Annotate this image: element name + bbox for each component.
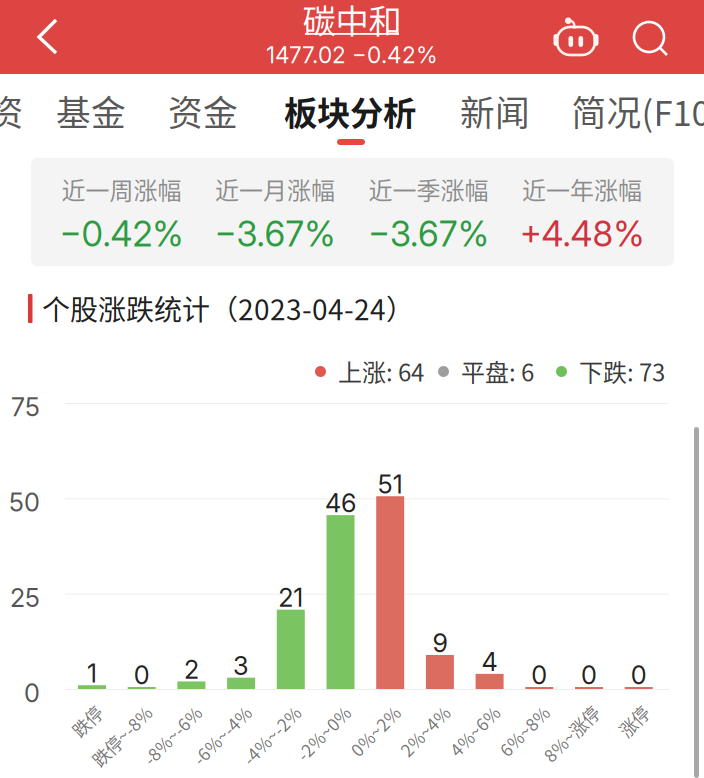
button[interactable]: 基金 [52, 74, 130, 148]
staticText: 下跌: 73 [579, 354, 665, 388]
staticText: +4.48% [519, 213, 644, 255]
button[interactable]: AI assistant [545, 0, 607, 74]
staticText: 0 [531, 660, 547, 690]
staticText: 50 [9, 487, 40, 518]
staticText: −3.67% [368, 213, 489, 255]
staticText: 基金 [56, 86, 126, 136]
staticText: -4%~-2% [224, 696, 298, 722]
button[interactable]: 资 [0, 74, 28, 148]
staticText: 4 [482, 647, 498, 677]
staticText: 3 [233, 650, 249, 681]
staticText: -8%~-6% [124, 696, 198, 722]
staticText: 8%~涨停 [526, 696, 596, 722]
staticText: −3.67% [214, 213, 335, 255]
staticText: 1477.02 −0.42% [266, 41, 438, 69]
staticText: 25 [10, 582, 40, 613]
staticText: 46 [325, 488, 356, 518]
button[interactable]: 板块分析 [270, 74, 430, 148]
staticText: −0.42% [59, 213, 183, 255]
staticText: 平盘: 6 [461, 354, 534, 388]
staticText: 21 [278, 582, 303, 613]
staticText: 跌停 [65, 696, 99, 722]
staticText: -6%~-4% [174, 696, 248, 722]
staticText: 1 [87, 658, 97, 689]
staticText: 0 [631, 660, 647, 690]
button[interactable]: 新闻 [456, 74, 534, 148]
staticText: 近一季涨幅 [368, 172, 488, 206]
staticText: 简况(F10 [571, 86, 704, 136]
staticText: 2%~4% [385, 696, 447, 722]
button[interactable]: Back [15, 0, 87, 74]
staticText: 碳中和 [302, 0, 401, 43]
staticText: 9 [432, 628, 447, 658]
staticText: 0 [581, 660, 597, 690]
staticText: 跌停~-8% [73, 696, 149, 722]
staticText: 板块分析 [284, 87, 416, 135]
staticText: 0%~2% [335, 696, 397, 722]
staticText: 资 [0, 86, 23, 136]
button[interactable]: 简况(F10 [566, 74, 704, 148]
staticText: 近一月涨幅 [215, 172, 335, 206]
staticText: 0 [24, 678, 40, 708]
staticText: 51 [378, 469, 403, 500]
staticText: 0 [134, 660, 150, 690]
staticText: 4%~6% [435, 696, 497, 722]
staticText: 6%~8% [484, 696, 546, 722]
staticText: -2%~0% [279, 696, 347, 722]
staticText: 新闻 [460, 86, 530, 136]
staticText: 近一周涨幅 [61, 172, 181, 206]
staticText: 个股涨跌统计（2023-04-24） [42, 288, 414, 328]
button[interactable]: 资金 [164, 74, 242, 148]
staticText: 上涨: 64 [338, 354, 424, 388]
staticText: 75 [11, 392, 40, 422]
button[interactable]: Search [620, 2, 682, 76]
staticText: 涨停 [612, 696, 646, 722]
staticText: 资金 [168, 86, 238, 136]
staticText: 2 [184, 654, 199, 685]
staticText: 近一年涨幅 [522, 172, 642, 206]
